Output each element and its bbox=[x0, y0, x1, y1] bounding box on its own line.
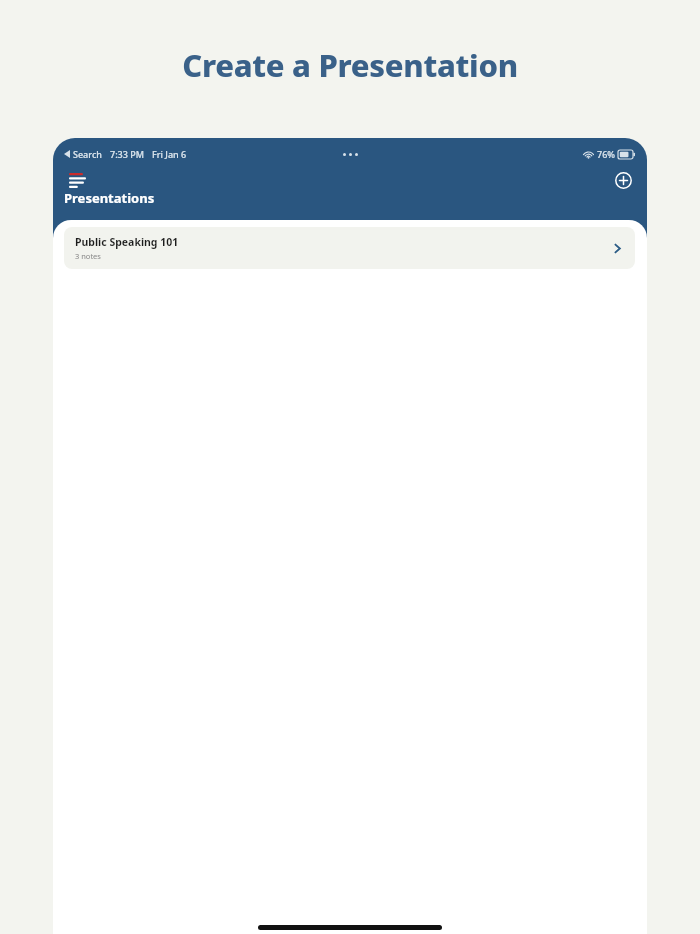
staticText: Presentations bbox=[64, 189, 155, 207]
staticText: Public Speaking 101 bbox=[75, 235, 179, 249]
button[interactable]: Add presentation bbox=[605, 162, 641, 198]
staticText: Fri Jan 6 bbox=[152, 148, 187, 160]
staticText: 76% bbox=[597, 148, 615, 160]
staticText: 7:33 PM bbox=[110, 148, 144, 160]
staticText: 3 notes bbox=[75, 251, 101, 261]
staticText: Create a Presentation bbox=[0, 44, 700, 86]
staticText: Search bbox=[73, 148, 102, 160]
button[interactable]: Public Speaking 101 bbox=[64, 227, 635, 269]
button[interactable]: Menu bbox=[59, 162, 95, 198]
